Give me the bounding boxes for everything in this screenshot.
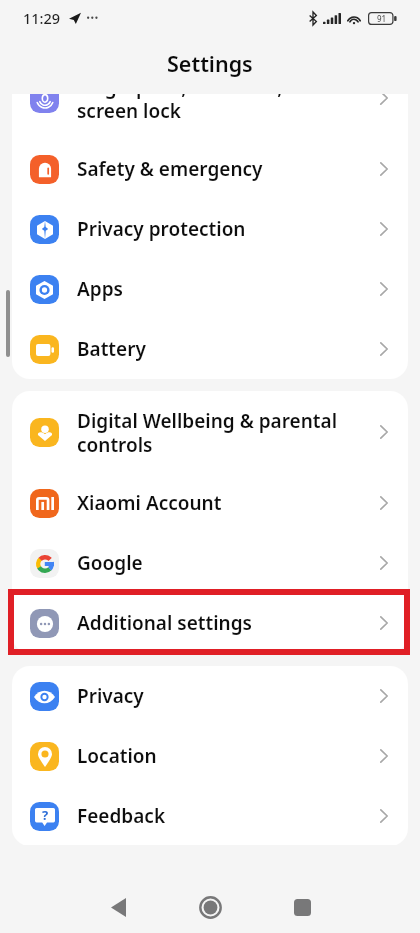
staticText: Google <box>77 550 372 576</box>
staticText: Safety & emergency <box>77 156 372 182</box>
staticText: Settings <box>167 49 253 78</box>
staticText: 91 <box>377 13 387 24</box>
staticText: Location <box>77 743 372 769</box>
staticText: Digital Wellbeing & parental controls <box>77 408 372 457</box>
button[interactable]: Location <box>12 726 408 786</box>
button[interactable]: Google <box>12 533 408 593</box>
staticText: Privacy <box>77 683 372 709</box>
button[interactable]: Recent apps <box>256 890 348 924</box>
staticText: Fingerprint, face data, screen lock <box>77 94 372 123</box>
button[interactable]: Battery <box>12 319 408 379</box>
staticText: ? <box>42 806 49 824</box>
button[interactable]: Additional settings <box>12 593 408 653</box>
button[interactable]: Privacy <box>12 666 408 726</box>
button[interactable]: Apps <box>12 259 408 319</box>
button[interactable]: Privacy protection <box>12 199 408 259</box>
button[interactable]: Xiaomi Account <box>12 473 408 533</box>
staticText: 11:29 <box>23 8 61 28</box>
staticText: Xiaomi Account <box>77 490 372 516</box>
button[interactable]: Fingerprint, face data, screen lock <box>12 94 408 139</box>
button[interactable]: Safety & emergency <box>12 139 408 199</box>
staticText: Apps <box>77 276 372 302</box>
staticText: Battery <box>77 336 372 362</box>
button[interactable]: ? <box>12 786 408 845</box>
button[interactable]: Home <box>164 890 256 924</box>
staticText: Additional settings <box>77 610 372 636</box>
button[interactable]: Digital Wellbeing & parental controls <box>12 391 408 473</box>
staticText: Privacy protection <box>77 216 372 242</box>
staticText: Feedback <box>77 803 372 829</box>
button[interactable]: Back <box>72 890 164 924</box>
